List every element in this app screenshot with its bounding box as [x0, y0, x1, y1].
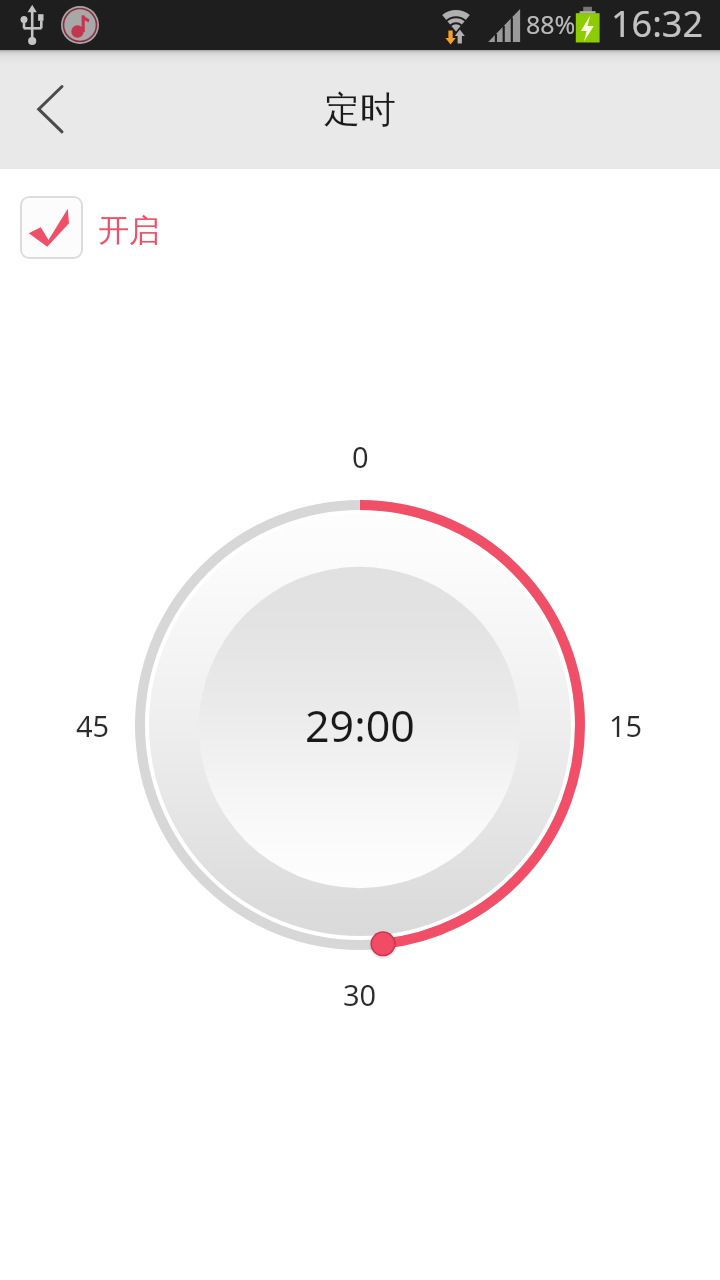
staticText: 45: [76, 706, 110, 745]
staticText: 定时: [324, 87, 396, 132]
staticText: 15: [609, 706, 643, 745]
button[interactable]: 开启: [20, 196, 160, 259]
button[interactable]: Back: [0, 50, 100, 169]
staticText: 开启: [98, 211, 160, 250]
staticText: 88%: [526, 7, 576, 41]
staticText: 0: [352, 437, 369, 476]
staticText: 29:00: [305, 696, 415, 755]
staticText: 30: [343, 975, 377, 1014]
staticText: 16:32: [611, 0, 704, 48]
